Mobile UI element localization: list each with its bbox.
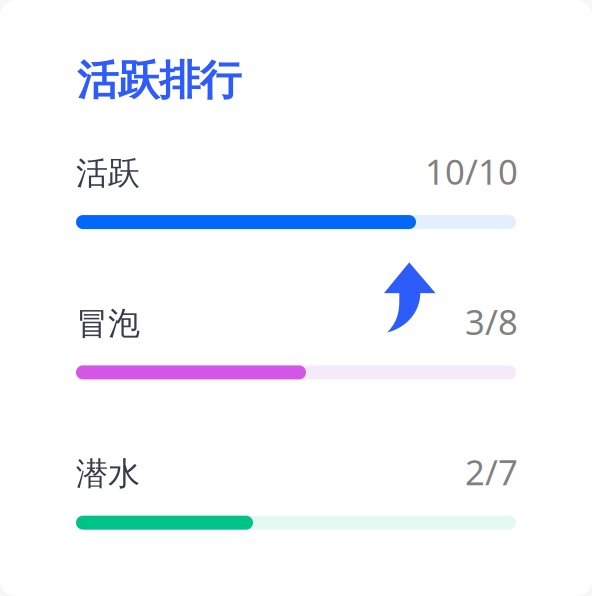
button[interactable]: 活跃 [76, 153, 516, 229]
staticText: 潜水 [76, 454, 140, 493]
staticText: 冒泡 [76, 304, 140, 343]
button[interactable]: 冒泡 [76, 303, 516, 379]
staticText: 10/10 [425, 148, 518, 194]
staticText: 活跃 [76, 154, 140, 193]
staticText: 活跃排行 [77, 55, 241, 106]
staticText: 3/8 [465, 299, 518, 345]
button[interactable]: 潜水 [76, 453, 516, 530]
staticText: 2/7 [465, 449, 518, 495]
